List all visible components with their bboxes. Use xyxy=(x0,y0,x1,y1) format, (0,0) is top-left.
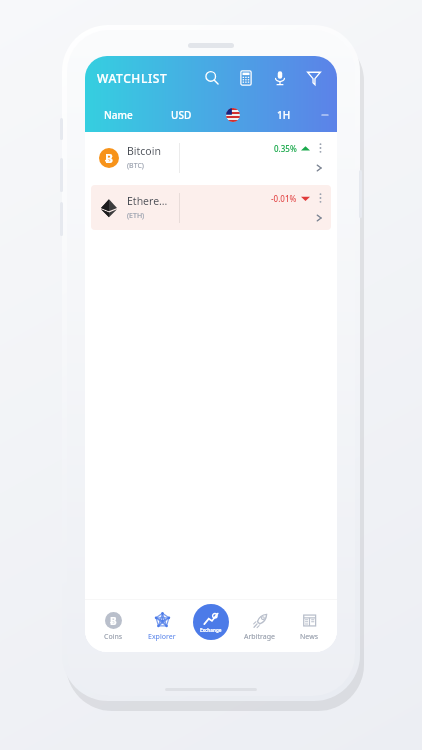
button[interactable]: More options xyxy=(318,108,332,122)
button[interactable]: Voice search xyxy=(269,67,291,89)
staticText: WATCHLIST xyxy=(97,70,168,86)
button[interactable]: Arbitrage xyxy=(235,600,284,652)
button[interactable]: Ƀ xyxy=(89,600,137,652)
button[interactable]: Ƀ xyxy=(91,135,331,180)
staticText: Coins xyxy=(104,632,123,642)
staticText: -0.01% xyxy=(271,193,297,204)
staticText: Ƀ xyxy=(110,614,117,628)
button[interactable]: Search xyxy=(201,67,223,89)
button[interactable]: Explorer xyxy=(137,600,186,652)
staticText: (BTC) xyxy=(127,161,144,171)
button[interactable]: More for Ethere… xyxy=(315,191,325,205)
button[interactable]: News xyxy=(284,600,333,652)
button[interactable]: Open Bitcoin details xyxy=(312,161,325,174)
staticText: Bitcoin xyxy=(127,144,161,158)
button[interactable]: Open Ethere… details xyxy=(312,211,325,224)
staticText: News xyxy=(300,632,318,642)
button[interactable]: More for Bitcoin xyxy=(315,141,325,155)
button[interactable]: Calculator xyxy=(235,67,257,89)
staticText: 0.35% xyxy=(274,143,297,154)
button[interactable]: USD xyxy=(171,108,192,122)
staticText: Ƀ xyxy=(105,150,113,166)
staticText: (ETH) xyxy=(127,211,145,221)
button[interactable]: 1H xyxy=(277,108,291,122)
button[interactable]: Exchange xyxy=(193,604,229,640)
staticText: Arbitrage xyxy=(244,632,275,642)
button[interactable]: Ethere… xyxy=(91,185,331,230)
button[interactable]: Name xyxy=(104,108,133,122)
staticText: Explorer xyxy=(148,632,176,642)
button[interactable]: Filter xyxy=(303,67,325,89)
staticText: Exchange xyxy=(200,627,222,633)
staticText: Ethere… xyxy=(127,194,168,208)
button[interactable]: Currency USD flag xyxy=(226,108,240,122)
